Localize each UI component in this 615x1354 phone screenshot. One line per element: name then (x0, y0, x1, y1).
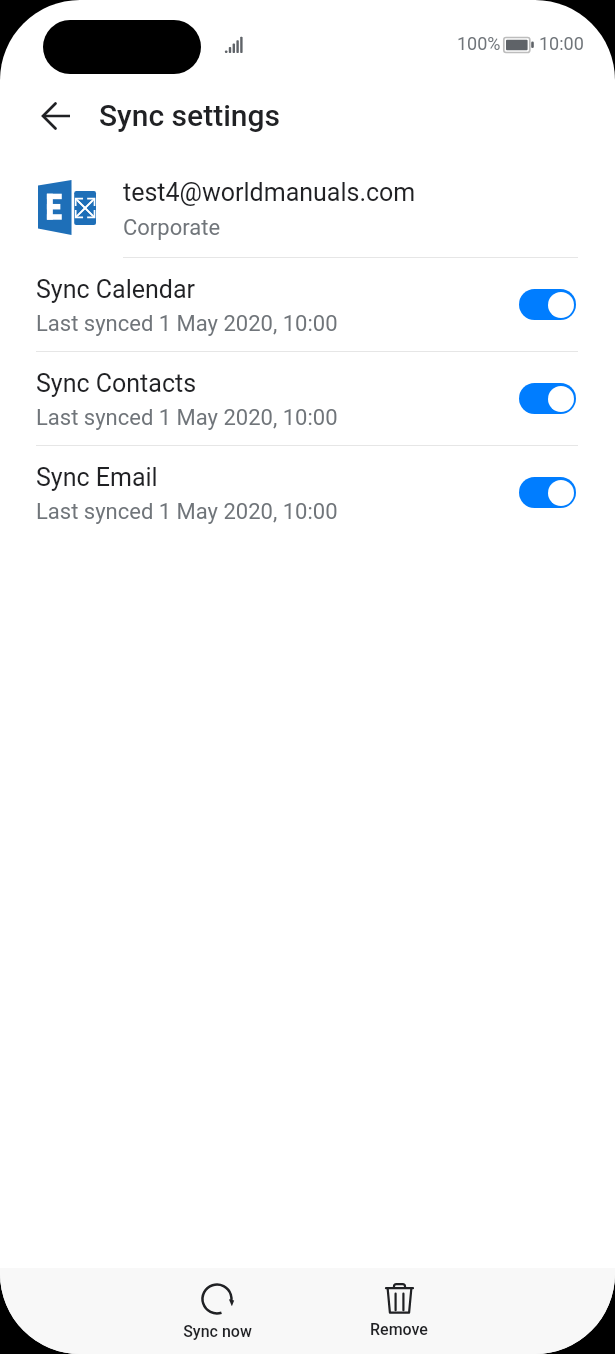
button[interactable]: test4@worldmanuals.com (0, 160, 615, 257)
button[interactable]: Remove (329, 1274, 469, 1348)
staticText: test4@worldmanuals.com (123, 178, 416, 207)
button[interactable]: Sync Contacts (0, 352, 615, 445)
staticText: Last synced 1 May 2020, 10:00 (36, 499, 338, 525)
button[interactable]: Sync Calendar (0, 258, 615, 351)
button[interactable]: Back (28, 88, 84, 144)
button[interactable]: Sync Email toggle (519, 477, 576, 508)
staticText: Sync settings (99, 98, 281, 133)
button[interactable]: Sync Contacts toggle (519, 383, 576, 414)
button[interactable]: Sync Calendar toggle (519, 289, 576, 320)
staticText: 100% (457, 33, 501, 54)
staticText: Sync now (183, 1322, 252, 1341)
staticText: Last synced 1 May 2020, 10:00 (36, 311, 338, 337)
staticText: Corporate (123, 215, 221, 241)
staticText: Last synced 1 May 2020, 10:00 (36, 405, 338, 431)
button[interactable]: Sync Email (0, 446, 615, 539)
staticText: Remove (370, 1320, 428, 1339)
staticText: 10:00 (539, 33, 584, 54)
button[interactable]: Sync now (147, 1274, 287, 1348)
staticText: Sync Contacts (36, 369, 197, 398)
staticText: Sync Email (36, 463, 158, 492)
staticText: Sync Calendar (36, 275, 195, 304)
